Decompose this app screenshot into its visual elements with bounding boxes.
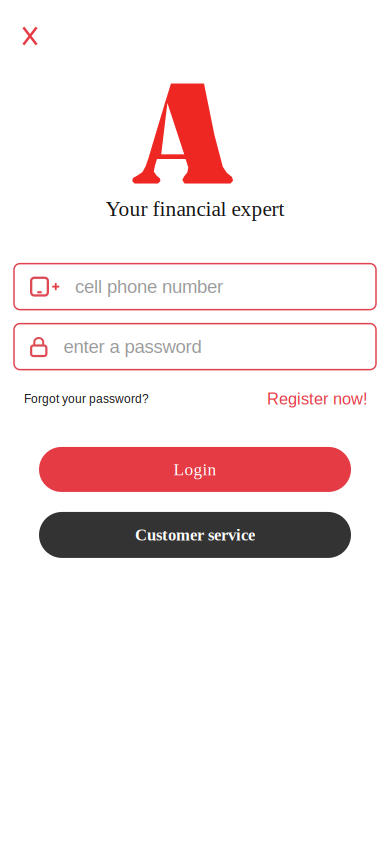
- button[interactable]: Customer service: [39, 512, 351, 558]
- staticText: Forgot your password?: [24, 392, 149, 405]
- button[interactable]: Forgot your password?: [24, 392, 149, 405]
- staticText: Login: [173, 460, 216, 479]
- staticText: Register now!: [267, 390, 368, 408]
- button[interactable]: Login: [39, 447, 351, 492]
- staticText: Customer service: [135, 526, 255, 544]
- button[interactable]: Close: [7, 12, 53, 58]
- staticText: Your financial expert: [105, 197, 284, 221]
- button[interactable]: Register now!: [267, 390, 368, 408]
- staticText: cell phone number: [75, 276, 223, 297]
- staticText: enter a password: [63, 336, 201, 357]
